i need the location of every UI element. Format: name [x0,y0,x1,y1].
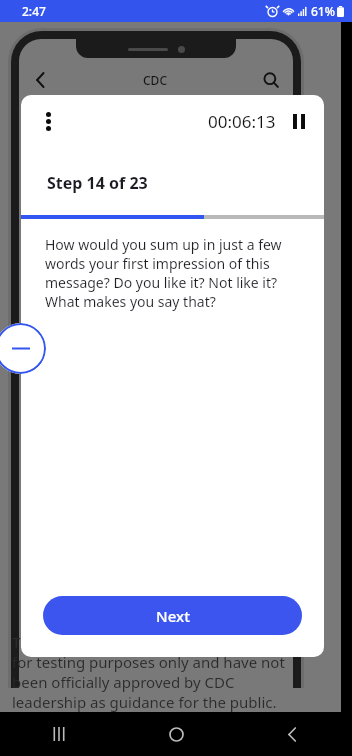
staticText: T [12,632,21,652]
staticText: been officially approved by CDC [12,672,235,692]
button[interactable]: Back [33,72,49,88]
button[interactable]: Home [118,712,235,756]
staticText: CDC [143,72,168,88]
staticText: Next [156,606,190,626]
button[interactable]: Search [263,72,279,88]
button[interactable]: Pause [290,108,308,134]
staticText: leadership as guidance for the public. [12,692,277,712]
staticText: 2:47 [22,3,46,19]
button[interactable]: Collapse [0,323,46,374]
staticText: Step 14 of 23 [47,172,148,194]
button[interactable]: Recents [0,712,118,756]
button[interactable]: More options [37,106,59,136]
button[interactable]: Next [43,596,302,635]
staticText: for testing purposes only and have not [12,652,285,672]
staticText: 00:06:13 [208,110,276,133]
button[interactable]: Back [235,712,352,756]
staticText: 61% [311,3,335,19]
staticText: How would you sum up in just a few words… [45,235,300,311]
